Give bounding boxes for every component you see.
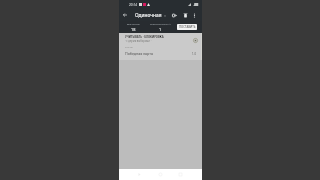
staticText: Победная карта [125, 51, 192, 56]
staticText: · с двумя выборами · [125, 39, 152, 43]
staticText: 18 [131, 27, 136, 32]
button[interactable]: Победная карта [119, 51, 202, 56]
staticText: СЫГРАНО ПАРТИЙ [150, 23, 171, 26]
staticText: ВЫИГРАНО [127, 23, 140, 26]
button[interactable]: Info [191, 37, 199, 43]
staticText: 1-0 [192, 52, 197, 56]
button[interactable]: ПОСТАВИТЬ [177, 24, 197, 30]
staticText: ПОСТАВИТЬ [179, 25, 196, 29]
button[interactable]: Delete [181, 11, 190, 20]
button[interactable]: Back [119, 9, 130, 21]
staticText: КАРТЫ [125, 45, 133, 48]
button[interactable]: Record video [170, 11, 179, 20]
staticText: 20:14 [129, 3, 138, 7]
button[interactable]: Одиночная [135, 10, 166, 21]
button[interactable]: УЧИТЫВАТЬ · БЛОКИРОВКА [119, 35, 202, 43]
staticText: УЧИТЫВАТЬ · БЛОКИРОВКА [125, 35, 164, 39]
staticText: Одиночная [135, 12, 162, 19]
staticText: 1 [159, 27, 162, 32]
button[interactable]: More options [190, 11, 199, 20]
